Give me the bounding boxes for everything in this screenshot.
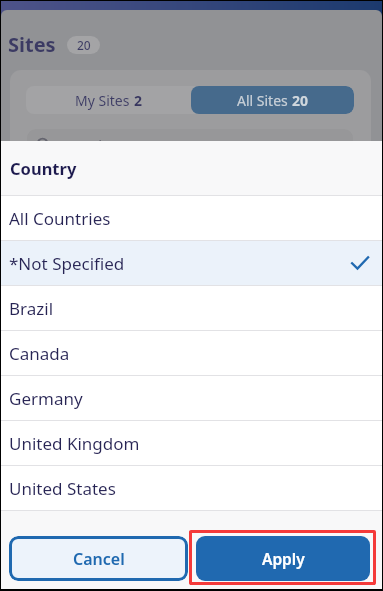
staticText: Search bbox=[60, 135, 108, 155]
staticText: Sites bbox=[8, 31, 56, 58]
staticText: Brazil bbox=[9, 297, 54, 320]
staticText: Apply bbox=[262, 548, 305, 569]
staticText: Canada bbox=[9, 342, 70, 365]
button[interactable]: Cancel bbox=[9, 536, 188, 581]
staticText: My Sites bbox=[75, 91, 134, 110]
staticText: *Not Specified bbox=[9, 252, 125, 275]
button[interactable]: United Kingdom bbox=[1, 421, 382, 465]
button[interactable]: Canada bbox=[1, 331, 382, 375]
button[interactable]: Apply bbox=[196, 536, 370, 581]
staticText: 20 bbox=[292, 91, 309, 110]
button[interactable]: *Not Specified bbox=[1, 241, 382, 285]
staticText: 20 bbox=[77, 37, 91, 53]
button[interactable]: United States bbox=[1, 466, 382, 510]
staticText: United States bbox=[9, 477, 116, 500]
button[interactable]: Germany bbox=[1, 376, 382, 420]
staticText: All Countries bbox=[9, 207, 111, 230]
button[interactable]: Brazil bbox=[1, 286, 382, 330]
staticText: All Sites bbox=[237, 91, 292, 110]
button[interactable]: All Sites bbox=[191, 86, 354, 114]
staticText: Cancel bbox=[73, 548, 125, 570]
button[interactable]: All Countries bbox=[1, 196, 382, 240]
button[interactable]: My Sites bbox=[26, 86, 191, 114]
staticText: Country bbox=[10, 157, 77, 179]
button[interactable]: Search bbox=[27, 129, 353, 161]
staticText: 2 bbox=[134, 91, 143, 110]
staticText: United Kingdom bbox=[9, 432, 140, 455]
staticText: Germany bbox=[9, 387, 83, 410]
